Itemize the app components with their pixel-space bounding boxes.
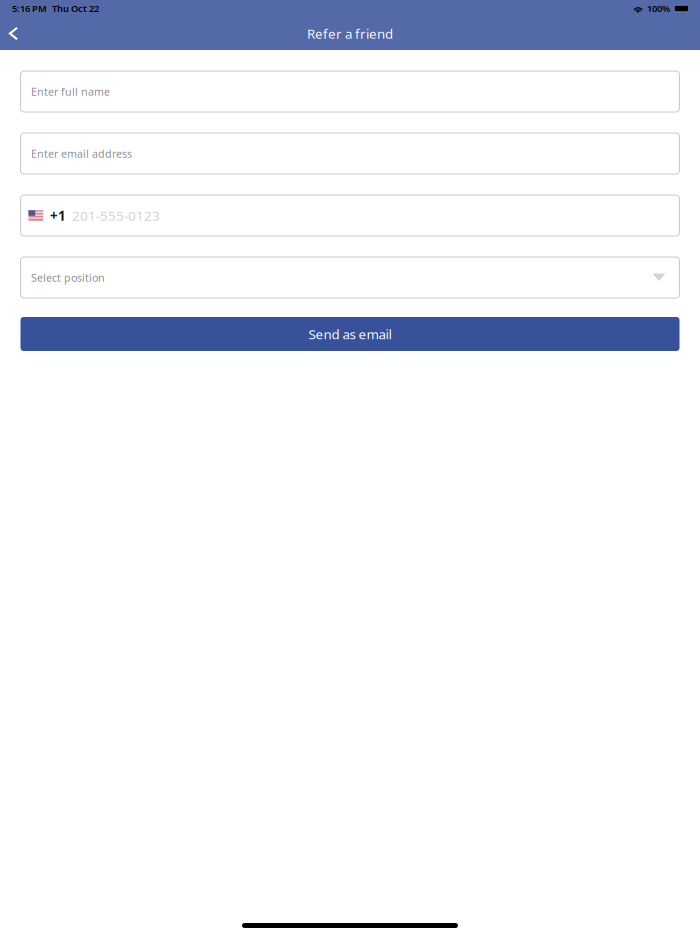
button[interactable]: Select position xyxy=(20,257,679,298)
button[interactable]: Send as email xyxy=(20,317,679,351)
staticText: Refer a friend xyxy=(307,25,393,42)
staticText: Send as email xyxy=(308,325,391,343)
staticText: 100% xyxy=(647,2,670,15)
staticText: 5:16 PM xyxy=(12,2,47,15)
button[interactable]: Enter email address xyxy=(20,133,679,174)
button[interactable]: Phone number, United States +1, 201-555-… xyxy=(20,195,679,236)
button[interactable]: Back xyxy=(0,17,27,50)
staticText: Enter full name xyxy=(31,84,110,99)
staticText: +1 xyxy=(50,207,66,224)
staticText: Enter email address xyxy=(31,146,132,161)
staticText: Select position xyxy=(31,270,105,285)
button[interactable]: Enter full name xyxy=(20,71,679,112)
staticText: 201-555-0123 xyxy=(72,207,160,224)
staticText: Thu Oct 22 xyxy=(52,2,99,15)
